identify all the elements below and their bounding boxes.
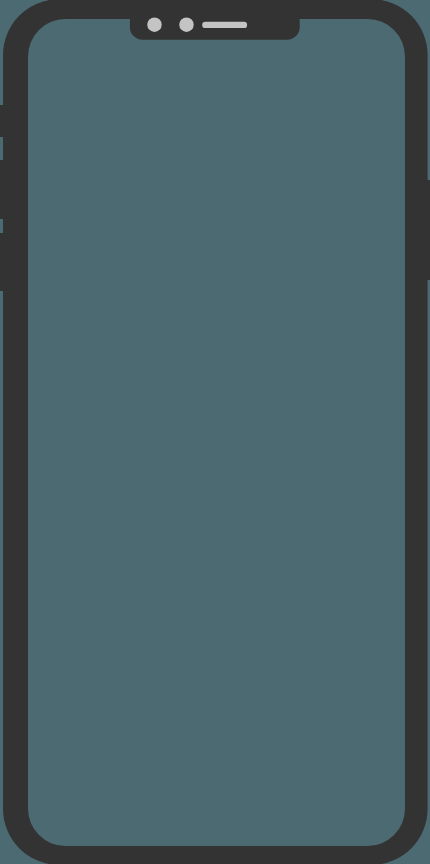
button[interactable]: Phone device preview <box>0 0 430 864</box>
